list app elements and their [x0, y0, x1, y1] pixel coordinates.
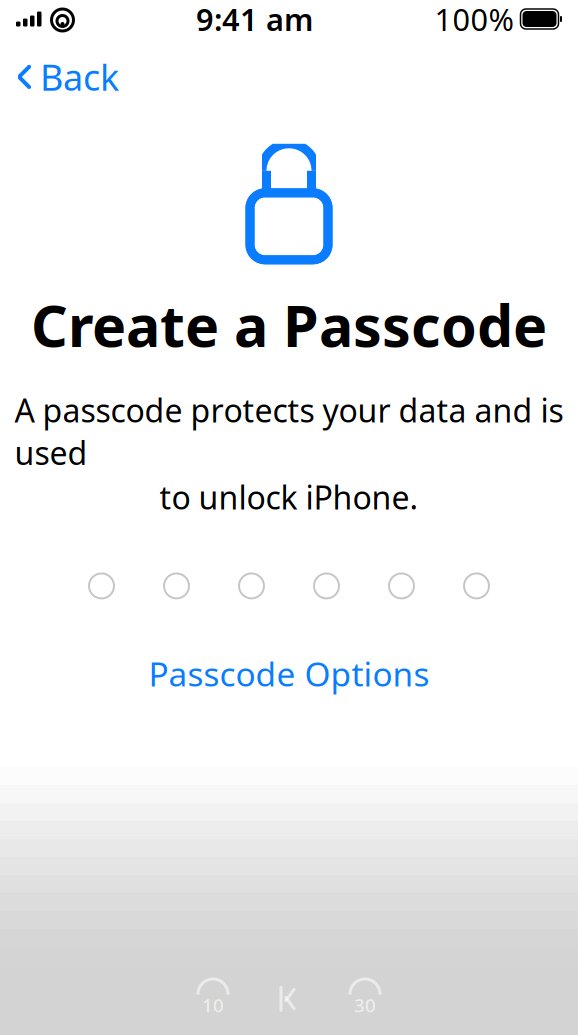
staticText: 10 [202, 993, 224, 1017]
staticText: 30 [354, 993, 376, 1017]
staticText: Create a Passcode [31, 287, 547, 363]
staticText: 9:41 am [196, 0, 313, 39]
staticText: A passcode protects your data and is use… [14, 389, 563, 474]
button[interactable]: Skip back 10 seconds [190, 976, 236, 1022]
staticText: 100% [434, 0, 513, 39]
button[interactable]: Skip forward 30 seconds [342, 976, 388, 1022]
staticText: Passcode Options [148, 651, 429, 696]
staticText: Back [40, 53, 119, 101]
staticText: to unlock iPhone. [159, 476, 418, 518]
button[interactable]: Passcode Options [130, 642, 447, 705]
button[interactable]: Play [266, 976, 312, 1022]
button[interactable]: Back [4, 45, 131, 109]
